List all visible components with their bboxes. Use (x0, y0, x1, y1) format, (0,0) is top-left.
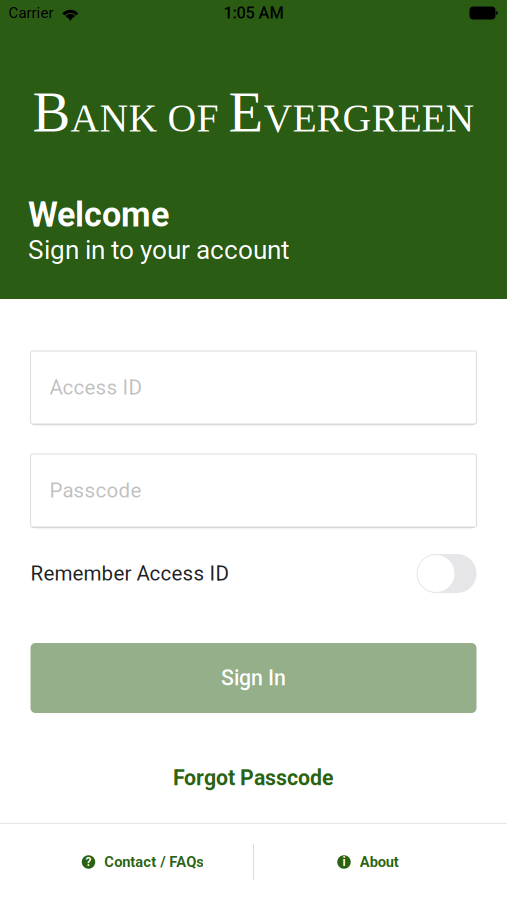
staticText: Welcome (28, 195, 169, 235)
staticText: ? (85, 855, 91, 869)
button[interactable]: Passcode (30, 454, 476, 530)
staticText: Access ID (49, 375, 141, 400)
staticText: Contact / FAQs (104, 853, 204, 871)
staticText: Bank of Evergreen (32, 81, 474, 144)
button[interactable]: ? (79, 824, 207, 900)
staticText: Passcode (49, 478, 141, 503)
button[interactable]: Forgot Passcode (30, 765, 476, 791)
staticText: Carrier (8, 4, 53, 22)
button[interactable]: Remember Access ID (416, 554, 476, 593)
staticText: About (360, 853, 399, 871)
staticText: Sign In (221, 665, 286, 690)
staticText: Remember Access ID (30, 561, 228, 586)
button[interactable]: Access ID (30, 351, 476, 427)
staticText: 1:05 AM (223, 3, 283, 23)
staticText: Sign in to your account (28, 235, 290, 265)
button[interactable]: i (337, 824, 399, 900)
staticText: i (342, 855, 345, 869)
staticText: Forgot Passcode (173, 765, 334, 790)
button[interactable]: Sign In (30, 643, 476, 713)
